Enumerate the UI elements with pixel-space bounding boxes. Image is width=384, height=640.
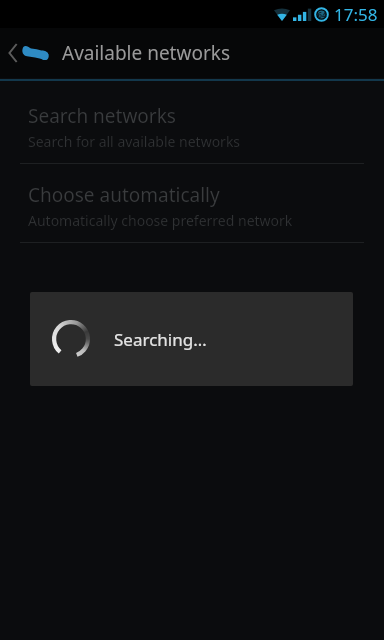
button[interactable]: Search networks <box>0 101 384 163</box>
button[interactable]: Navigate up <box>0 28 384 78</box>
button[interactable]: Searching… <box>30 292 353 386</box>
staticText: 17:58 <box>334 3 378 26</box>
staticText: Automatically choose preferred network <box>28 211 293 230</box>
staticText: Search networks <box>28 103 176 129</box>
button[interactable]: Navigate up <box>8 29 52 77</box>
staticText: Available networks <box>62 40 230 66</box>
staticText: Choose automatically <box>28 182 220 208</box>
staticText: Search for all available networks <box>28 132 241 151</box>
staticText: 64 <box>317 9 327 20</box>
staticText: Searching… <box>114 328 207 351</box>
button[interactable]: Choose automatically <box>0 180 384 242</box>
